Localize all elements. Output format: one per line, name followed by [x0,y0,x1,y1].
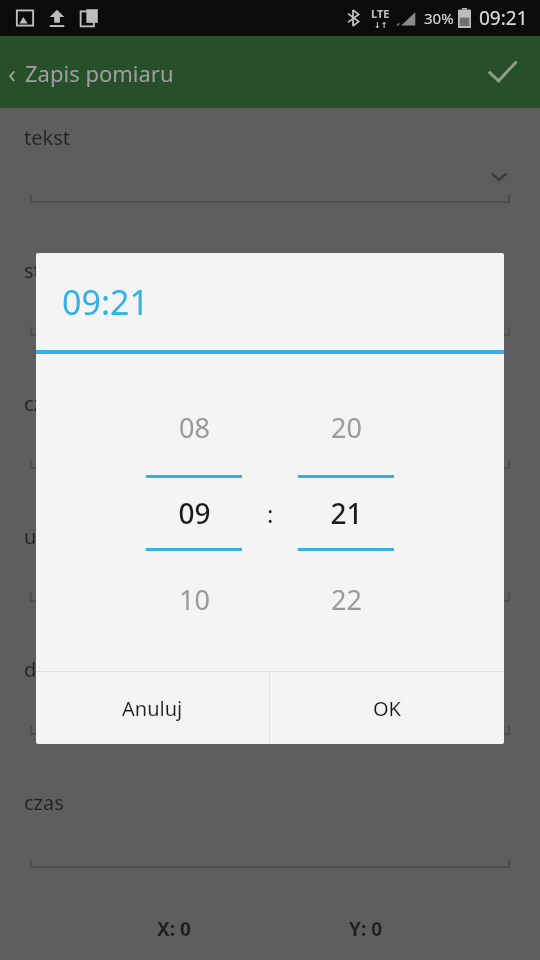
staticText: Zapis pomiaru [25,58,174,88]
staticText: X: 0 [157,916,191,942]
staticText: ↓↑ [374,21,388,30]
staticText: Y: 0 [349,916,383,942]
staticText: stanowisko [24,257,130,284]
staticText: 09:21 [62,279,149,325]
button[interactable]: Save [478,48,526,96]
staticText: 10 [179,581,210,618]
staticText: 22 [331,581,362,618]
staticText: Anuluj [122,695,183,722]
staticText: 21 [330,494,363,532]
staticText: czas [24,789,64,816]
button[interactable]: 20 [298,397,394,629]
staticText: : [267,497,274,530]
staticText: 09:21 [479,5,528,31]
staticText: tekst [24,124,70,151]
staticText: 08 [179,409,210,446]
staticText: uwagi [24,523,81,550]
button[interactable]: OK [270,672,504,744]
staticText: OK [373,695,401,722]
button[interactable]: 08 [146,397,242,629]
staticText: 09 [178,494,211,532]
staticText: 20 [331,409,362,446]
button[interactable]: Anuluj [36,672,269,744]
staticText: czujnik [24,390,89,417]
staticText: data [24,656,66,683]
button[interactable]: Back [0,47,186,98]
staticText: 30% [424,8,454,28]
staticText: LTE [371,6,390,21]
staticText: ‹ [8,55,17,90]
